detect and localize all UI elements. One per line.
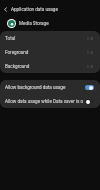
button[interactable]: Allow background data usage (0, 80, 100, 94)
button[interactable]: Total (0, 31, 100, 45)
staticText: Background (5, 64, 30, 69)
staticText: Total (5, 36, 16, 41)
staticText: 0 B (87, 50, 94, 55)
button[interactable]: Allow data usage while Data saver is on (0, 94, 100, 108)
button[interactable]: Back (0, 2, 11, 16)
staticText: Allow background data usage (5, 85, 83, 90)
staticText: Application data usage (11, 7, 58, 12)
staticText: Allow data usage while Data saver is on (5, 99, 83, 104)
staticText: Media Storage (19, 21, 49, 26)
staticText: 0 B (87, 64, 94, 69)
staticText: 0 B (87, 36, 94, 41)
staticText: Foreground (5, 50, 29, 55)
button[interactable]: Foreground (0, 45, 100, 59)
button[interactable]: Background (0, 59, 100, 73)
